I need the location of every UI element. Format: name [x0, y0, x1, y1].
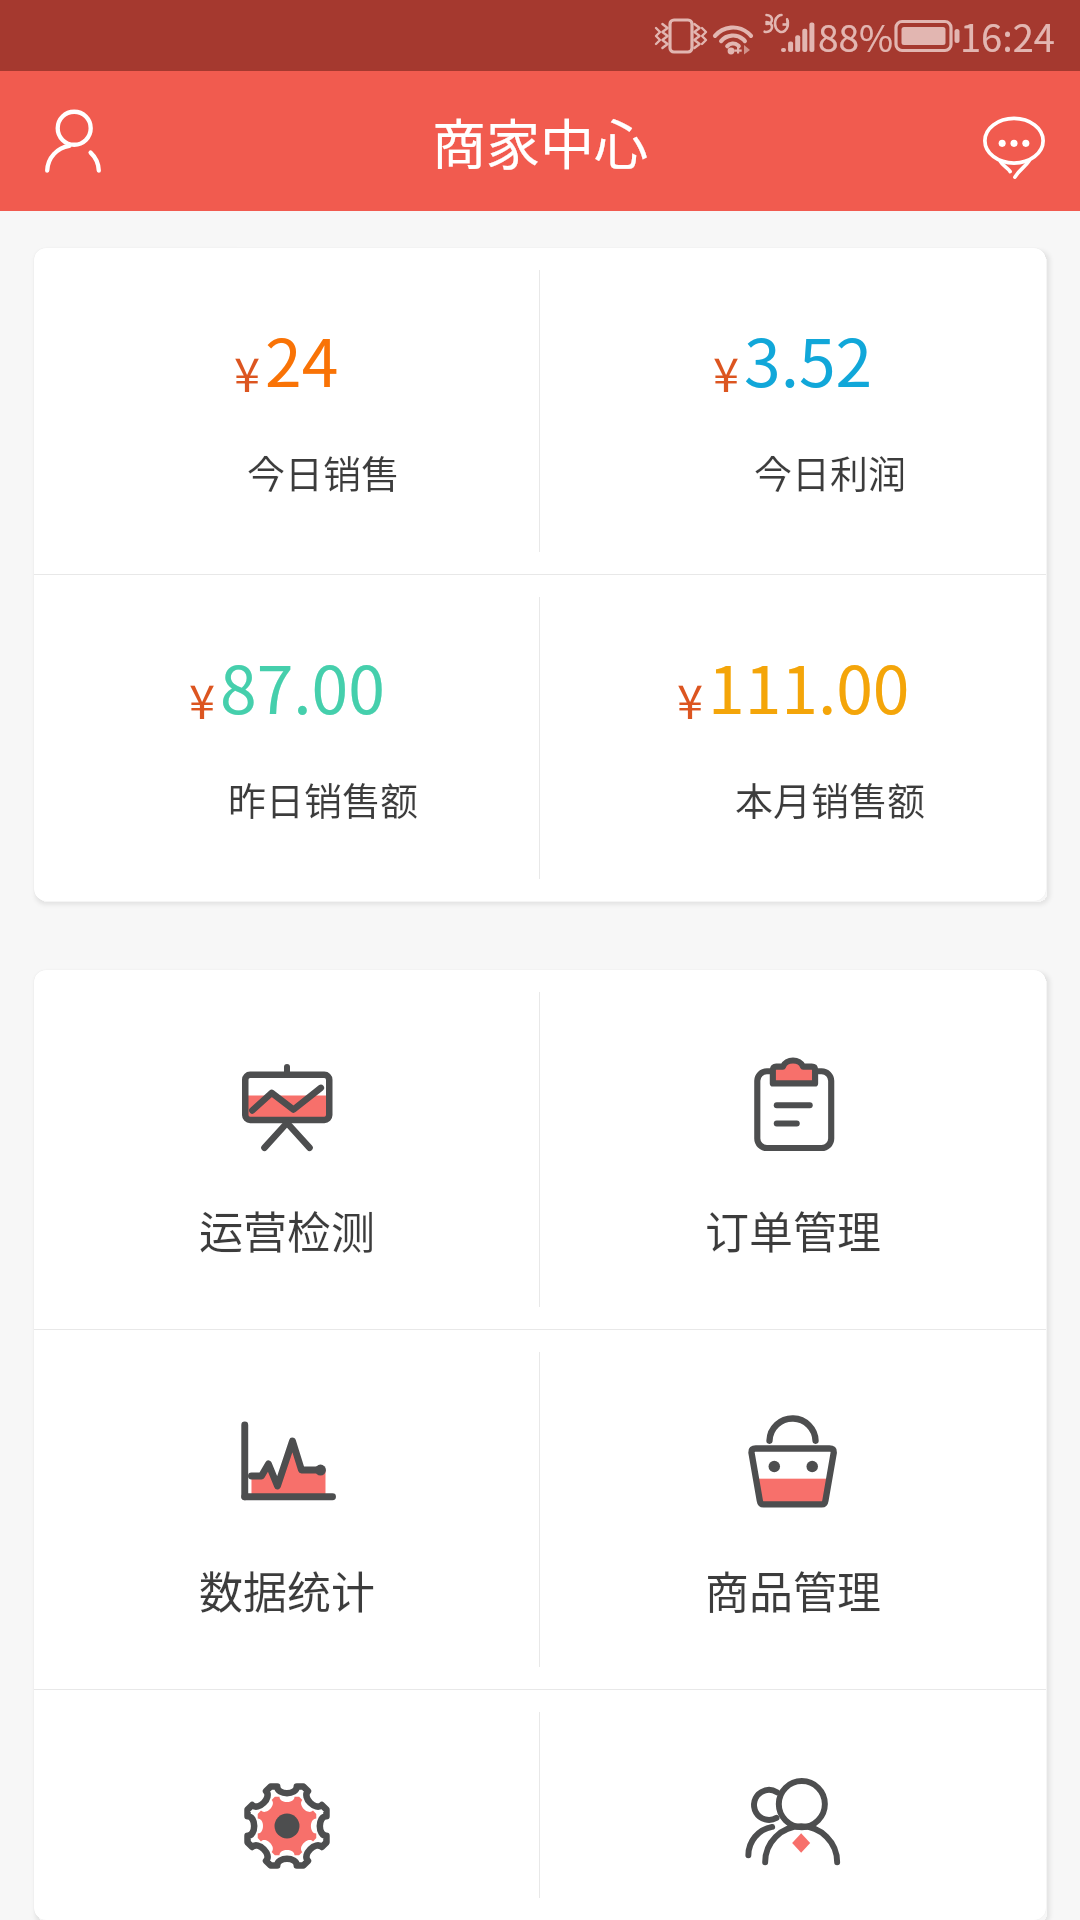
button[interactable]: ¥ [540, 575, 1046, 901]
staticText: ¥ [189, 664, 216, 732]
button[interactable]: ¥ [34, 575, 539, 901]
staticText: 24 [265, 310, 339, 406]
staticText: 本月销售额 [735, 771, 926, 826]
staticText: 订单管理 [705, 1198, 881, 1262]
staticText: 今日利润 [754, 444, 907, 499]
button[interactable]: 系统设置 [34, 1690, 539, 1920]
button[interactable]: 运营检测 [34, 970, 539, 1329]
staticText: 运营检测 [199, 1198, 375, 1262]
button[interactable]: Profile [15, 84, 130, 199]
staticText: 今日销售 [247, 444, 400, 499]
button[interactable]: 订单管理 [540, 970, 1046, 1329]
staticText: ¥ [234, 337, 261, 405]
staticText: ¥ [713, 337, 740, 405]
staticText: ¥ [677, 664, 704, 732]
staticText: 商家中心 [432, 102, 648, 180]
staticText: 昨日销售额 [228, 771, 419, 826]
button[interactable]: ¥ [34, 248, 539, 574]
staticText: 88% [818, 9, 894, 63]
button[interactable]: More [956, 84, 1071, 199]
button[interactable]: ¥ [540, 248, 1046, 574]
button[interactable]: 会员管理 [540, 1690, 1046, 1920]
staticText: 87.00 [220, 637, 385, 733]
staticText: 数据统计 [199, 1558, 375, 1622]
staticText: 3.52 [744, 310, 873, 406]
staticText: 16:24 [960, 8, 1055, 63]
button[interactable]: 商品管理 [540, 1330, 1046, 1689]
staticText: 111.00 [708, 637, 910, 733]
button[interactable]: 数据统计 [34, 1330, 539, 1689]
staticText: 商品管理 [705, 1558, 881, 1622]
